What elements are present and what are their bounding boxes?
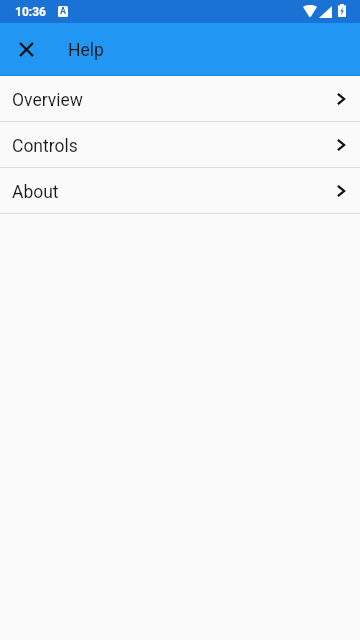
staticText: Controls	[12, 136, 78, 157]
button[interactable]: Controls	[0, 122, 360, 167]
staticText: A	[60, 6, 67, 17]
staticText: 10:36	[15, 5, 46, 19]
staticText: About	[12, 182, 59, 203]
staticText: Help	[68, 40, 104, 61]
button[interactable]: About	[0, 168, 360, 213]
button[interactable]: Overview	[0, 76, 360, 121]
button[interactable]: Close	[3, 26, 51, 74]
staticText: Overview	[12, 90, 83, 111]
